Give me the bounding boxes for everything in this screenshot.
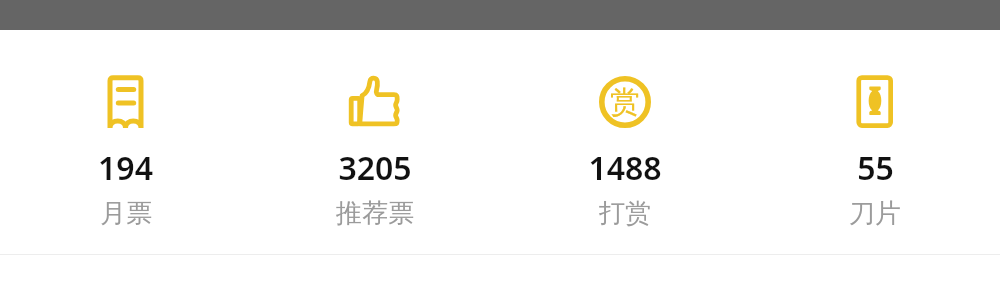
staticText: 推荐票 <box>336 197 414 230</box>
staticText: 月票 <box>100 197 152 230</box>
staticText: 194 <box>98 146 153 190</box>
staticText: 1488 <box>588 146 662 190</box>
other: 推荐票 <box>348 75 402 129</box>
staticText: 刀片 <box>849 197 901 230</box>
other: 打赏 <box>598 75 652 129</box>
other: 月票 <box>99 75 153 129</box>
staticText: 55 <box>857 146 894 190</box>
other: 刀片 <box>848 75 902 129</box>
staticText: 打赏 <box>599 197 651 230</box>
staticText: 3205 <box>338 146 412 190</box>
staticText: 赏 <box>610 83 640 121</box>
button[interactable]: 刀片 <box>750 30 1000 254</box>
button[interactable]: 月票 <box>0 30 250 254</box>
button[interactable]: 打赏 <box>500 30 750 254</box>
button[interactable]: 推荐票 <box>250 30 500 254</box>
